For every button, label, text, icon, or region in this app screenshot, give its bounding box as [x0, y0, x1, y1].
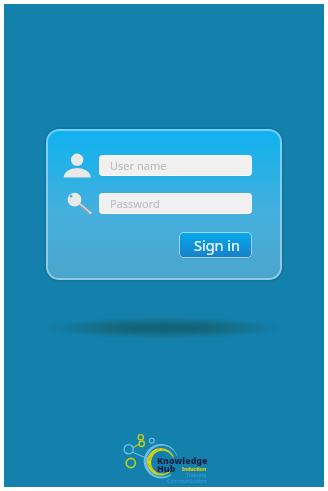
staticText: Hub [157, 463, 176, 475]
button[interactable]: User name [100, 156, 251, 175]
staticText: Password [110, 196, 160, 211]
staticText: Knowledge [157, 455, 208, 467]
staticText: User name [110, 158, 167, 173]
staticText: Induction [182, 466, 207, 473]
button[interactable]: Password [100, 194, 251, 213]
staticText: Communication [167, 478, 207, 485]
button[interactable]: Sign in [179, 232, 252, 258]
staticText: Sign in [194, 235, 241, 255]
staticText: Training [186, 472, 207, 479]
